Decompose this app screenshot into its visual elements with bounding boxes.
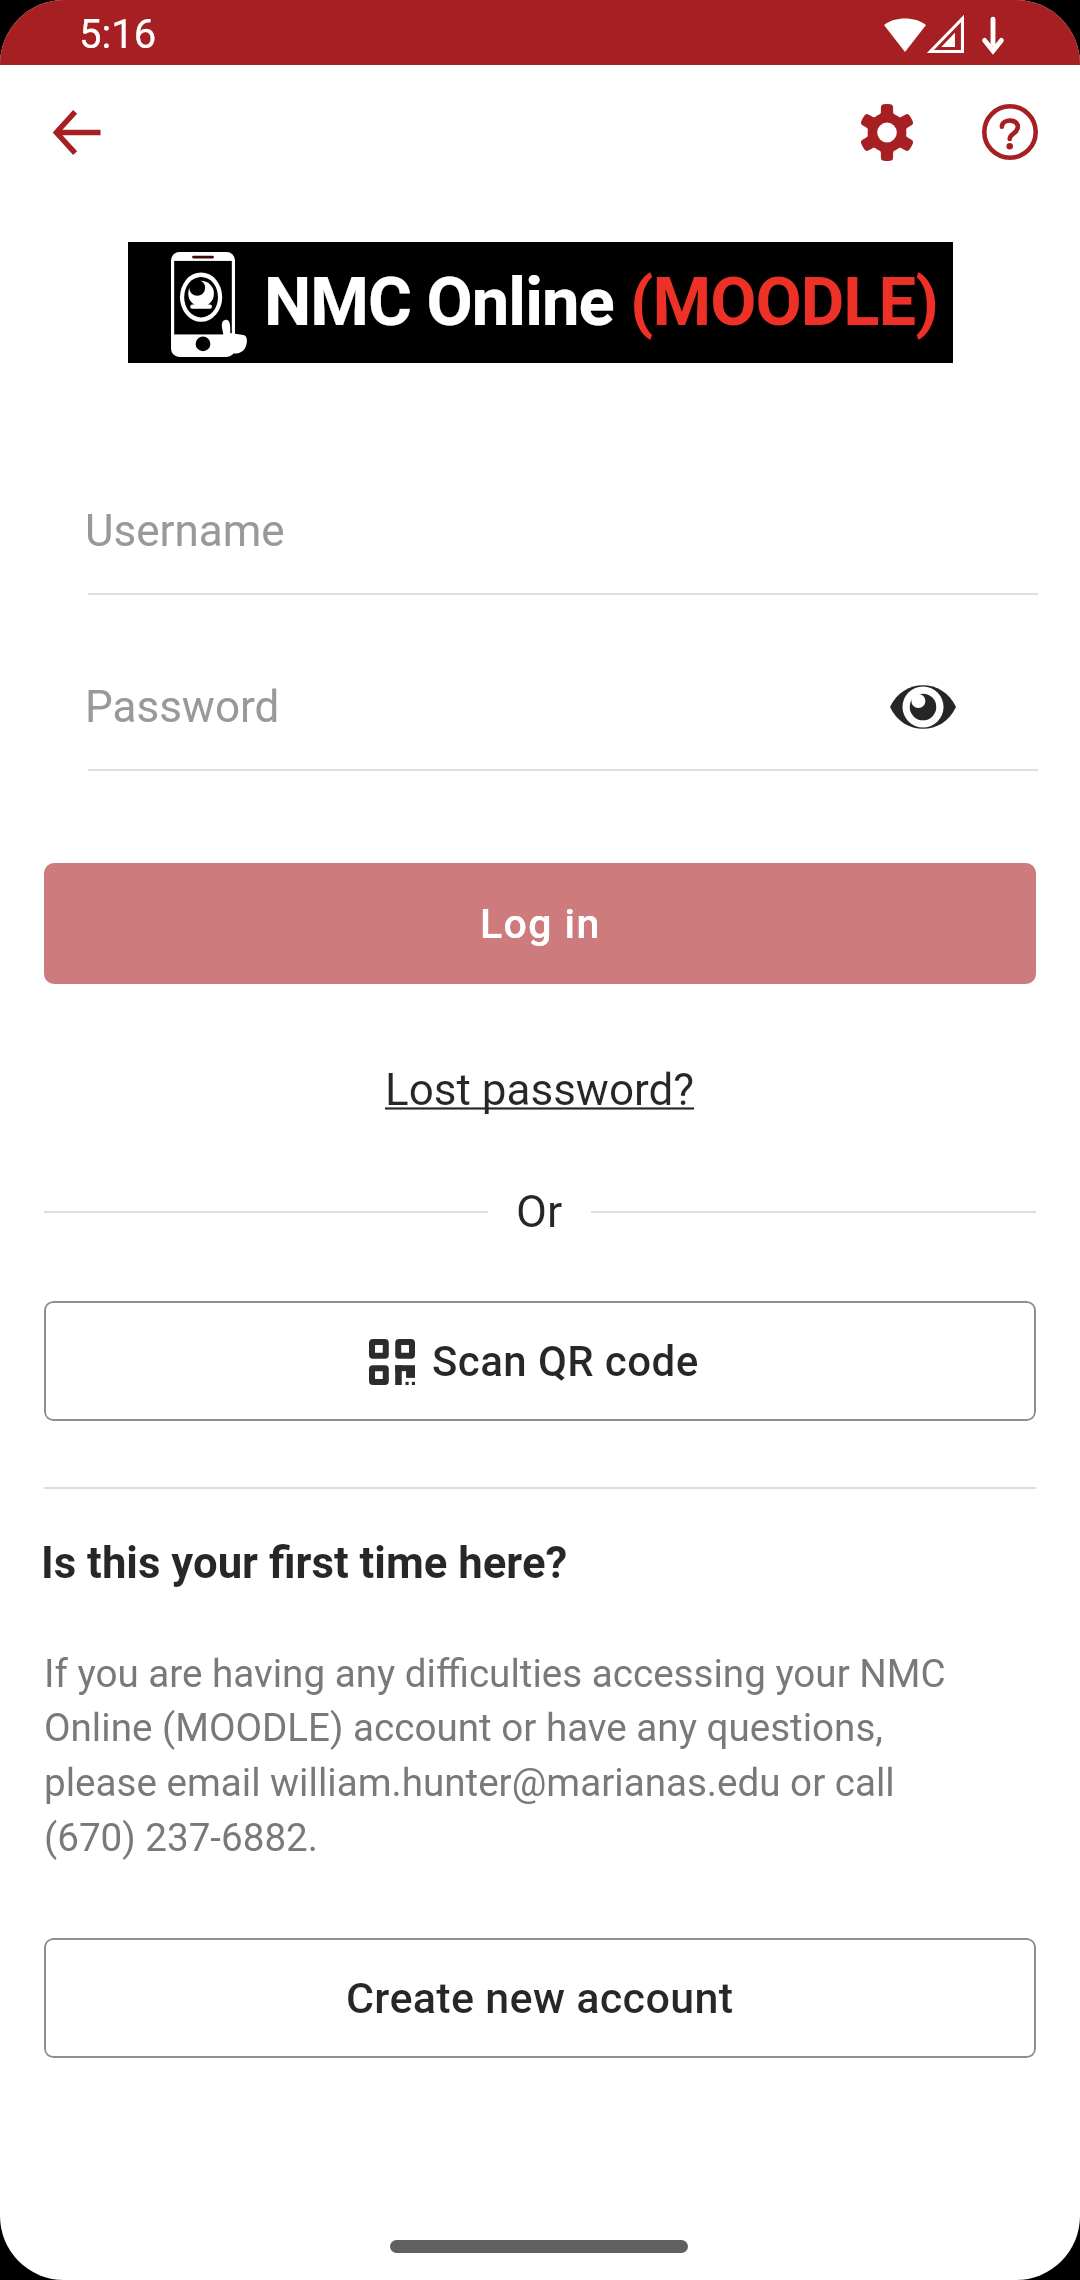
button[interactable]: Show password xyxy=(878,662,968,752)
staticText: If you are having any difficulties acces… xyxy=(44,1651,974,1861)
button[interactable]: Log in xyxy=(44,863,1036,984)
button[interactable]: Scan QR code xyxy=(44,1301,1036,1421)
button[interactable]: Lost password? xyxy=(375,1058,705,1122)
button[interactable]: Settings xyxy=(839,84,935,180)
staticText: Password xyxy=(85,681,280,733)
button[interactable]: Create new account xyxy=(44,1938,1036,2058)
button[interactable]: Back xyxy=(29,84,125,180)
staticText: Scan QR code xyxy=(432,1337,699,1386)
staticText: NMC Online xyxy=(264,263,630,342)
button[interactable]: Help xyxy=(962,84,1058,180)
staticText: Or xyxy=(516,1185,563,1238)
staticText: Is this your first time here? xyxy=(41,1537,568,1588)
staticText: Lost password? xyxy=(385,1064,695,1116)
staticText: Username xyxy=(85,505,285,557)
staticText: Log in xyxy=(480,900,601,948)
staticText: 5:16 xyxy=(79,11,157,58)
staticText: Create new account xyxy=(346,1973,734,2023)
staticText: (MOODLE) xyxy=(630,263,938,342)
